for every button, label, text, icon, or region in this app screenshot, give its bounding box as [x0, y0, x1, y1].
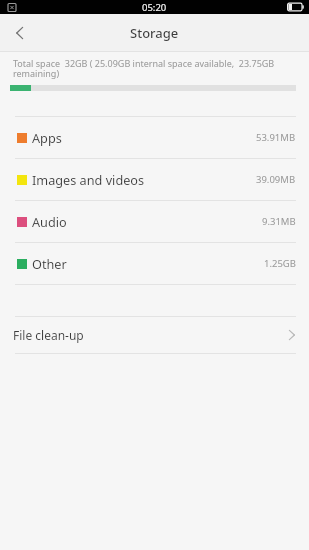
button[interactable]: File clean-up [0, 317, 309, 353]
button[interactable]: Apps [0, 117, 309, 158]
staticText: 9.31MB [262, 215, 296, 228]
button[interactable]: Audio [0, 201, 309, 242]
staticText: Storage [130, 24, 179, 42]
staticText: Apps [32, 129, 62, 146]
staticText: Images and videos [32, 171, 145, 188]
button[interactable]: Other [0, 243, 309, 284]
staticText: Total space 32GB ( 25.09GB internal spac… [13, 57, 285, 80]
staticText: File clean-up [13, 327, 84, 343]
staticText: 1.25GB [264, 257, 296, 270]
button[interactable] [6, 19, 34, 47]
staticText: 39.09MB [256, 173, 296, 186]
button[interactable]: Images and videos [0, 159, 309, 200]
staticText: Audio [32, 213, 67, 230]
staticText: 53.91MB [256, 131, 296, 144]
staticText: Other [32, 255, 67, 272]
staticText: 05:20 [142, 1, 167, 14]
